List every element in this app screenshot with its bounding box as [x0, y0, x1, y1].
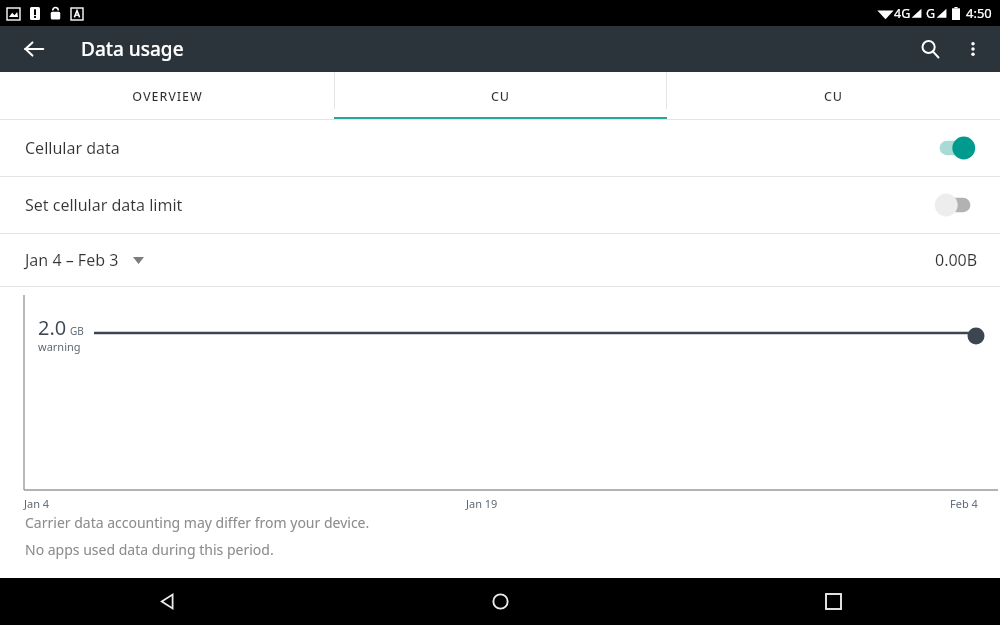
button[interactable]: CU	[667, 72, 1000, 120]
button[interactable]: Recents	[667, 578, 1000, 625]
staticText: 2.0	[38, 314, 67, 341]
staticText: Feb 4	[950, 496, 978, 511]
staticText: 4G	[894, 5, 911, 22]
button[interactable]: CU	[334, 72, 667, 120]
button[interactable]: OVERVIEW	[0, 72, 334, 120]
button[interactable]: Off	[930, 189, 980, 221]
staticText: Data usage	[81, 36, 184, 62]
staticText: G	[926, 5, 936, 22]
staticText: Carrier data accounting may differ from …	[25, 513, 370, 532]
button[interactable]: Home	[334, 578, 667, 625]
button[interactable]: Search	[908, 27, 952, 71]
staticText: Jan 4 – Feb 3	[25, 249, 119, 271]
button[interactable]: Navigate up	[12, 27, 56, 71]
button[interactable]: Set cellular data limit	[0, 177, 1000, 233]
button[interactable]: Jan 4 – Feb 3	[25, 249, 144, 271]
staticText: OVERVIEW	[132, 88, 203, 105]
staticText: Set cellular data limit	[25, 194, 930, 216]
staticText: No apps used data during this period.	[25, 540, 274, 559]
staticText: Jan 19	[466, 496, 498, 511]
staticText: GB	[70, 324, 84, 338]
staticText: 4:50	[966, 4, 992, 22]
button[interactable]: On	[930, 132, 980, 164]
staticText: Cellular data	[25, 137, 930, 159]
button[interactable]: Back	[0, 578, 334, 625]
staticText: warning	[38, 339, 81, 354]
button[interactable]: Cellular data	[0, 120, 1000, 176]
staticText: Jan 4	[24, 496, 50, 511]
staticText: CU	[824, 88, 843, 105]
staticText: 0.00B	[935, 249, 978, 271]
button[interactable]: More options	[952, 28, 994, 70]
staticText: CU	[491, 88, 510, 105]
